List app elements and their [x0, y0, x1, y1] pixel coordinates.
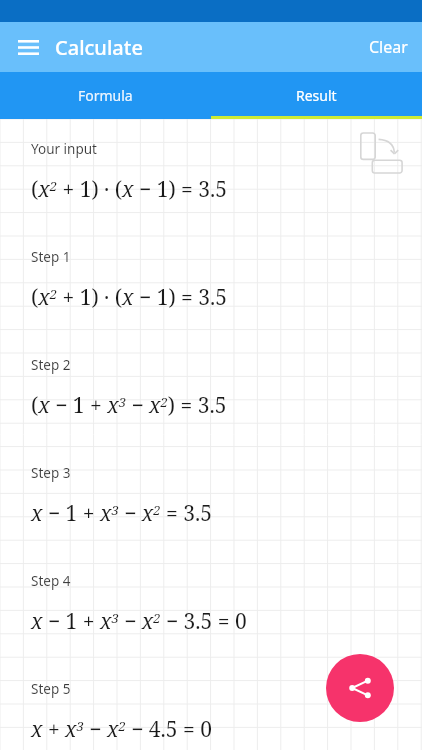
staticText: Step 3: [31, 464, 71, 482]
button[interactable]: Formula: [0, 72, 211, 119]
staticText: Calculate: [55, 34, 143, 61]
staticText: Clear: [369, 36, 408, 58]
staticText: x − 1 + x3 − x2 − 3.5 = 0: [31, 607, 247, 636]
staticText: Your input: [31, 140, 97, 158]
staticText: Step 1: [31, 248, 71, 266]
staticText: Step 2: [31, 356, 71, 374]
button[interactable]: Share: [326, 654, 394, 722]
button[interactable]: Result: [211, 72, 422, 119]
button[interactable]: Open navigation menu: [8, 27, 48, 67]
staticText: (x2 + 1) · (x − 1) = 3.5: [31, 283, 228, 312]
staticText: Formula: [78, 86, 133, 105]
staticText: Step 5: [31, 680, 71, 698]
staticText: Result: [296, 86, 337, 105]
button[interactable]: Rotate device for landscape view: [356, 133, 404, 173]
staticText: (x2 + 1) · (x − 1) = 3.5: [31, 175, 228, 204]
staticText: x + x3 − x2 − 4.5 = 0: [31, 715, 212, 744]
staticText: (x − 1 + x3 − x2) = 3.5: [31, 391, 227, 420]
staticText: Step 4: [31, 572, 71, 590]
button[interactable]: Clear: [355, 26, 422, 68]
staticText: x − 1 + x3 − x2 = 3.5: [31, 499, 212, 528]
